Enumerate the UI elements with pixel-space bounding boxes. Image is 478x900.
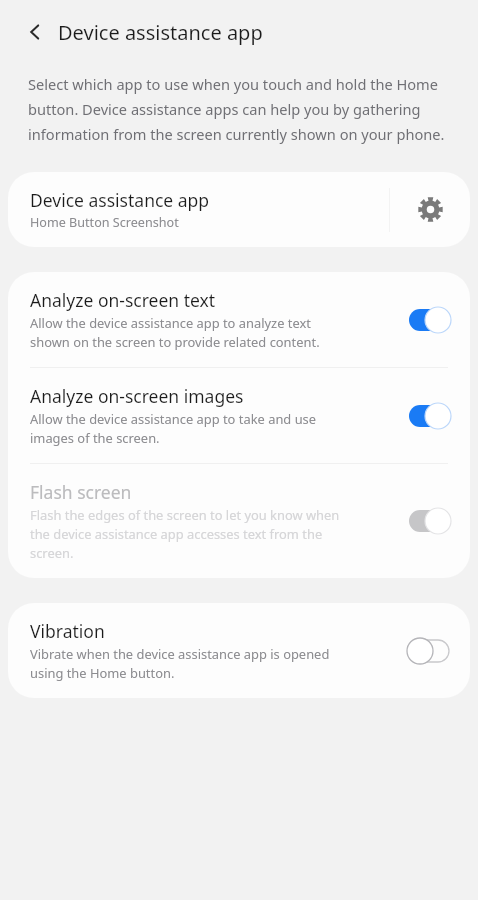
staticText: Home Button Screenshot (30, 214, 179, 231)
button[interactable]: Vibration (8, 603, 470, 698)
staticText: Flash screen (30, 480, 132, 504)
button[interactable]: Toggle (402, 303, 456, 337)
staticText: Analyze on-screen text (30, 288, 216, 312)
staticText: Vibrate when the device assistance app i… (30, 645, 330, 682)
staticText: Device assistance app (30, 188, 210, 212)
button[interactable]: Device assistance app settings (390, 172, 470, 247)
staticText: Analyze on-screen images (30, 384, 244, 408)
staticText: Select which app to use when you touch a… (28, 74, 458, 144)
button[interactable]: Flash screen (8, 464, 470, 578)
staticText: Device assistance app (58, 19, 263, 46)
button[interactable]: Toggle (402, 634, 456, 668)
button[interactable]: Analyze on-screen images (8, 368, 470, 463)
button[interactable]: Analyze on-screen text (8, 272, 470, 367)
button[interactable]: Toggle (402, 504, 456, 538)
button[interactable]: Device assistance app (8, 172, 470, 247)
button[interactable]: Toggle (402, 399, 456, 433)
staticText: Vibration (30, 619, 105, 643)
staticText: Flash the edges of the screen to let you… (30, 506, 340, 562)
staticText: Allow the device assistance app to analy… (30, 314, 320, 351)
button[interactable]: Back (16, 13, 54, 51)
staticText: Allow the device assistance app to take … (30, 410, 317, 447)
